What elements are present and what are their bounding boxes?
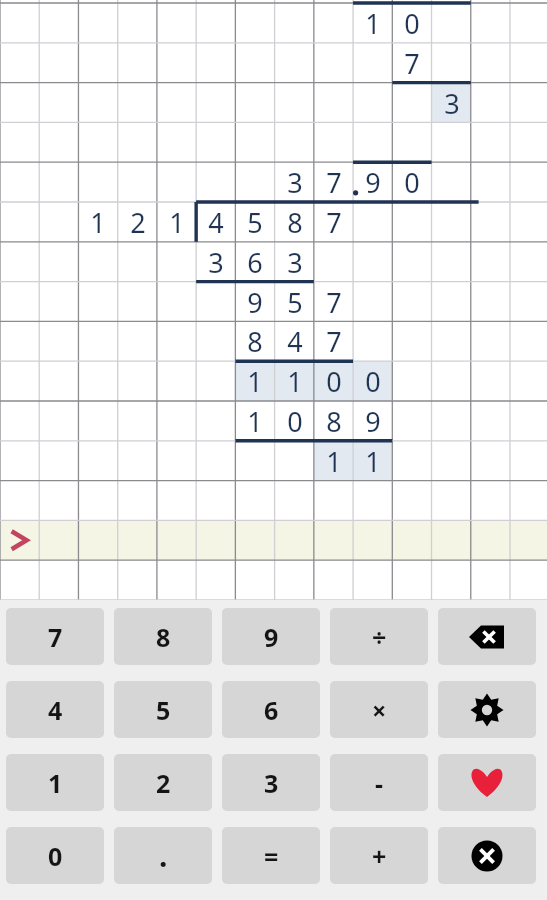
button[interactable]: + <box>330 827 428 884</box>
staticText: 9 <box>264 620 279 654</box>
staticText: = <box>264 839 279 873</box>
staticText: 3 <box>208 244 224 281</box>
staticText: 7 <box>326 284 342 321</box>
staticText: 1 <box>90 204 106 241</box>
staticText: 7 <box>48 620 63 654</box>
staticText: 3 <box>287 244 303 281</box>
staticText: 3 <box>287 164 303 201</box>
button[interactable]: × <box>330 681 428 738</box>
staticText: 5 <box>247 204 263 241</box>
staticText: 9 <box>247 284 263 321</box>
button[interactable]: 0 <box>6 827 104 884</box>
staticText: 4 <box>48 693 63 727</box>
staticText: 4 <box>208 204 224 241</box>
staticText: 0 <box>404 5 420 42</box>
staticText: 4 <box>287 323 303 360</box>
staticText: 0 <box>404 164 420 201</box>
staticText: - <box>375 766 384 800</box>
button[interactable]: 8 <box>114 608 212 665</box>
button[interactable]: Favorite <box>438 754 536 811</box>
staticText: 7 <box>326 204 342 241</box>
staticText: 1 <box>365 443 381 480</box>
staticText: . <box>159 835 168 876</box>
staticText: 1 <box>169 204 185 241</box>
button[interactable]: 4 <box>6 681 104 738</box>
staticText: 7 <box>326 323 342 360</box>
staticText: 2 <box>156 766 171 800</box>
button[interactable]: ÷ <box>330 608 428 665</box>
staticText: 0 <box>326 363 342 400</box>
staticText: × <box>372 693 387 727</box>
staticText: 3 <box>444 85 460 122</box>
button[interactable]: 7 <box>6 608 104 665</box>
button[interactable]: Backspace <box>438 608 536 665</box>
staticText: + <box>372 839 387 873</box>
staticText: 1 <box>287 363 303 400</box>
staticText: 6 <box>264 693 279 727</box>
staticText: 9 <box>365 403 381 440</box>
button[interactable]: - <box>330 754 428 811</box>
button[interactable]: = <box>222 827 320 884</box>
staticText: 1 <box>48 766 63 800</box>
staticText: 1 <box>247 363 263 400</box>
button[interactable]: 9 <box>222 608 320 665</box>
staticText: 1 <box>365 5 381 42</box>
staticText: 5 <box>156 693 171 727</box>
button[interactable]: 2 <box>114 754 212 811</box>
staticText: 2 <box>130 204 146 241</box>
button[interactable]: . <box>114 827 212 884</box>
button[interactable]: Settings <box>438 681 536 738</box>
staticText: 7 <box>404 45 420 82</box>
staticText: 0 <box>287 403 303 440</box>
staticText: 5 <box>287 284 303 321</box>
staticText: 3 <box>264 766 279 800</box>
staticText: 1 <box>326 443 342 480</box>
button[interactable]: 3 <box>222 754 320 811</box>
staticText: ÷ <box>372 620 387 654</box>
staticText: 8 <box>247 323 263 360</box>
button[interactable]: 6 <box>222 681 320 738</box>
staticText: 0 <box>48 839 63 873</box>
staticText: 0 <box>365 363 381 400</box>
button[interactable]: 1 <box>6 754 104 811</box>
button[interactable]: 5 <box>114 681 212 738</box>
staticText: 9 <box>365 164 381 201</box>
staticText: 8 <box>287 204 303 241</box>
staticText: 7 <box>326 164 342 201</box>
button[interactable]: Clear <box>438 827 536 884</box>
staticText: 8 <box>156 620 171 654</box>
staticText: 8 <box>326 403 342 440</box>
staticText: 6 <box>247 244 263 281</box>
staticText: 1 <box>247 403 263 440</box>
